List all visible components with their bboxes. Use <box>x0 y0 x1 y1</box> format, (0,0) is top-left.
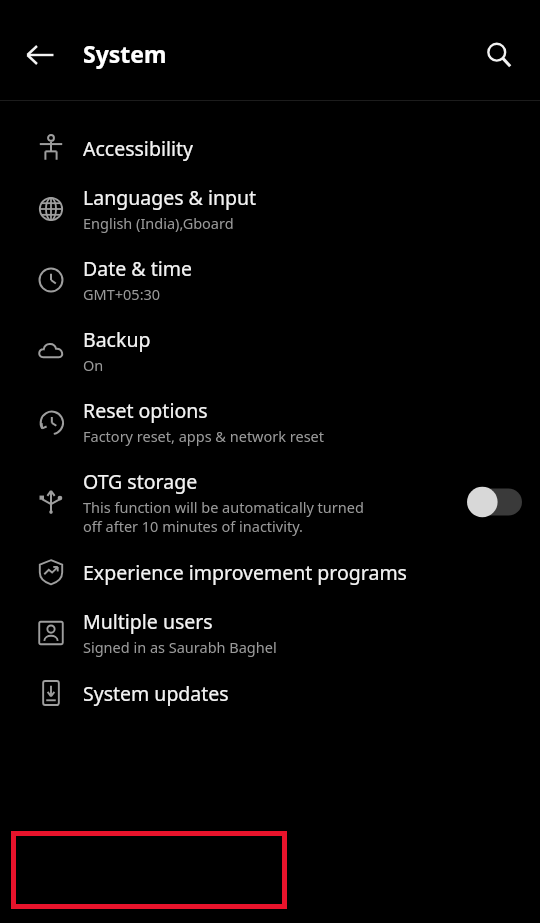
button[interactable]: Reset options <box>0 386 540 457</box>
button[interactable]: Back <box>16 31 64 79</box>
staticText: OTG storage <box>83 468 198 495</box>
button[interactable]: System updates <box>0 668 540 718</box>
staticText: Experience improvement programs <box>83 559 407 586</box>
staticText: Backup <box>83 326 151 353</box>
staticText: Reset options <box>83 397 208 424</box>
button[interactable]: Multiple users <box>0 597 540 668</box>
staticText: Multiple users <box>83 608 213 635</box>
button[interactable]: OTG storage toggle <box>466 485 522 519</box>
staticText: Factory reset, apps & network reset <box>83 426 325 446</box>
staticText: System updates <box>83 680 229 707</box>
staticText: GMT+05:30 <box>83 284 161 304</box>
staticText: This function will be automatically turn… <box>83 497 364 536</box>
button[interactable]: Search <box>475 31 523 79</box>
staticText: Accessibility <box>83 135 193 162</box>
staticText: English (India),Gboard <box>83 213 234 233</box>
staticText: Languages & input <box>83 184 257 211</box>
staticText: Signed in as Saurabh Baghel <box>83 637 277 657</box>
button[interactable]: Backup <box>0 315 540 386</box>
button[interactable]: Accessibility <box>0 123 540 173</box>
staticText: Date & time <box>83 255 192 282</box>
button[interactable]: Languages & input <box>0 173 540 244</box>
button[interactable]: OTG storage <box>0 457 540 547</box>
button[interactable]: Date & time <box>0 244 540 315</box>
staticText: System <box>83 38 167 69</box>
button[interactable]: Experience improvement programs <box>0 547 540 597</box>
staticText: On <box>83 355 104 375</box>
